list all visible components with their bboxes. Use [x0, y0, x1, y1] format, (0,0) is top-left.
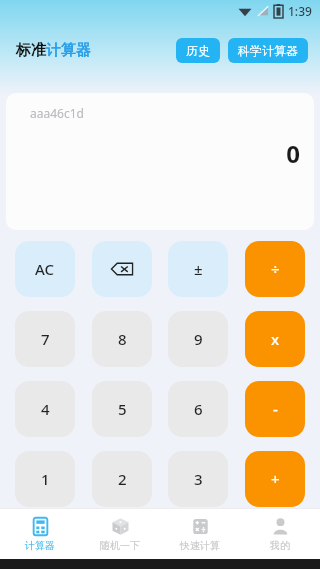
button[interactable]: 4 [15, 381, 75, 437]
button[interactable]: Backspace [92, 241, 152, 297]
button[interactable]: 5 [92, 381, 152, 437]
button[interactable]: 7 [15, 311, 75, 367]
staticText: 0 [286, 137, 300, 170]
button[interactable]: 计算器 [0, 509, 80, 559]
button[interactable]: 随机一下 [80, 509, 160, 559]
staticText: 计算器 [46, 41, 91, 60]
staticText: 计算器 [25, 539, 55, 552]
button[interactable]: ÷ [245, 241, 305, 297]
staticText: 4 [41, 399, 50, 419]
staticText: 快速计算 [180, 539, 220, 552]
button[interactable]: 9 [168, 311, 228, 367]
staticText: 5 [118, 399, 127, 419]
staticText: aaa46c1d [30, 105, 84, 121]
staticText: 科学计算器 [238, 43, 298, 58]
staticText: ÷ [271, 259, 280, 279]
staticText: ± [194, 259, 203, 279]
button[interactable]: ± [168, 241, 228, 297]
button[interactable]: 2 [92, 451, 152, 507]
button[interactable]: - [245, 381, 305, 437]
button[interactable]: 我的 [240, 509, 320, 559]
staticText: x [271, 329, 280, 349]
staticText: 8 [118, 329, 127, 349]
button[interactable]: 科学计算器 [228, 38, 308, 63]
button[interactable]: 6 [168, 381, 228, 437]
button[interactable]: 8 [92, 311, 152, 367]
staticText: 6 [194, 399, 203, 419]
staticText: 1:39 [288, 3, 312, 19]
staticText: 我的 [270, 539, 290, 552]
staticText: AC [35, 259, 55, 279]
button[interactable]: + [245, 451, 305, 507]
staticText: 历史 [186, 43, 210, 58]
staticText: 9 [194, 329, 203, 349]
button[interactable]: 1 [15, 451, 75, 507]
button[interactable]: x [245, 311, 305, 367]
button[interactable]: 历史 [176, 38, 220, 63]
button[interactable]: AC [15, 241, 75, 297]
staticText: 1 [41, 469, 50, 489]
staticText: 2 [118, 469, 127, 489]
staticText: 随机一下 [100, 539, 140, 552]
staticText: 7 [41, 329, 50, 349]
staticText: 3 [194, 469, 203, 489]
staticText: - [273, 399, 278, 419]
staticText: + [271, 469, 280, 489]
staticText: 标准 [16, 41, 46, 60]
button[interactable]: 3 [168, 451, 228, 507]
button[interactable]: 快速计算 [160, 509, 240, 559]
